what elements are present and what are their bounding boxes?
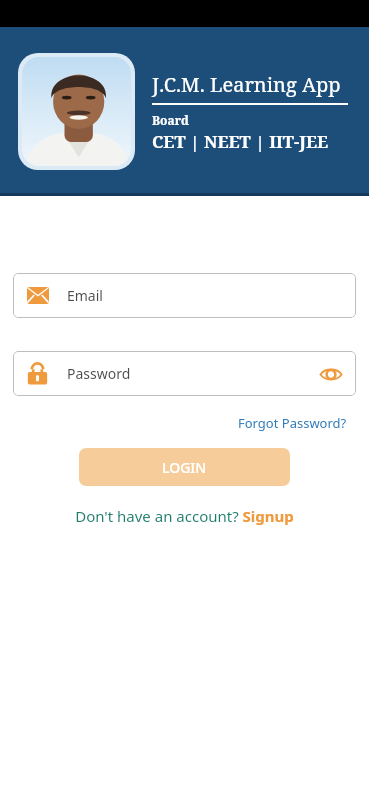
button[interactable]: Don't have an account? Signup	[67, 503, 302, 529]
button[interactable]: Email	[13, 273, 356, 318]
button[interactable]: Forgot Password?	[216, 410, 369, 436]
staticText: CET | NEET | IIT-JEE	[152, 130, 329, 153]
button[interactable]: LOGIN	[79, 448, 290, 486]
staticText: LOGIN	[162, 458, 207, 477]
staticText: Email	[67, 286, 103, 305]
staticText: Board	[152, 112, 189, 128]
staticText: Password	[67, 364, 318, 383]
staticText: Forgot Password?	[238, 414, 347, 432]
staticText: J.C.M. Learning App	[152, 71, 341, 98]
staticText: Don't have an account? Signup	[75, 506, 294, 526]
button[interactable]: Password	[13, 351, 356, 396]
button[interactable]: Show password	[318, 361, 344, 387]
